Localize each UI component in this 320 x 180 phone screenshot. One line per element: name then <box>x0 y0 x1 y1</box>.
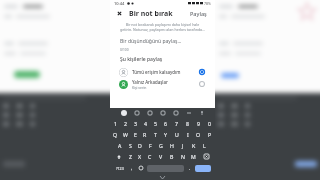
button[interactable]: Google <box>121 110 127 116</box>
button[interactable]: U <box>171 129 182 140</box>
button[interactable]: 4 <box>140 118 150 129</box>
staticText: O <box>196 131 201 138</box>
staticText: G <box>159 142 163 149</box>
button[interactable]: K <box>188 140 199 151</box>
button[interactable]: L <box>199 140 210 151</box>
staticText: 78% <box>204 1 211 6</box>
button[interactable]: O <box>193 129 204 140</box>
button[interactable]: ?123 <box>113 162 127 174</box>
button[interactable]: 6 <box>160 118 171 129</box>
staticText: 0/100 <box>120 48 129 52</box>
button[interactable]: Gönder <box>195 165 211 172</box>
staticText: T <box>154 131 157 138</box>
button[interactable]: , <box>127 162 136 174</box>
staticText: F <box>149 142 152 149</box>
staticText: W <box>123 131 128 138</box>
staticText: I <box>187 131 189 138</box>
button[interactable]: H <box>166 140 177 151</box>
staticText: H <box>170 142 174 149</box>
staticText: 4 <box>144 120 147 127</box>
staticText: D <box>138 142 142 149</box>
button[interactable]: V <box>155 151 166 162</box>
button[interactable]: Seçili değil <box>198 80 206 88</box>
button[interactable]: Araç 3 <box>173 110 179 116</box>
staticText: V <box>159 153 163 160</box>
button[interactable]: Shift <box>112 151 125 162</box>
staticText: , <box>131 165 133 172</box>
button[interactable]: X <box>135 151 145 162</box>
button[interactable]: Tümü erişim kalsaydım <box>110 66 215 78</box>
staticText: P <box>208 131 212 138</box>
staticText: J <box>182 142 184 149</box>
button[interactable]: C <box>145 151 155 162</box>
staticText: 7 <box>175 120 178 127</box>
button[interactable]: 0 <box>204 118 215 129</box>
staticText: . <box>189 165 191 172</box>
staticText: Tümü erişim kalsaydım <box>132 69 181 75</box>
button[interactable]: A <box>115 140 125 151</box>
button[interactable]: S <box>125 140 135 151</box>
button[interactable]: D <box>135 140 145 151</box>
button[interactable]: N <box>177 151 188 162</box>
button[interactable]: 5 <box>150 118 160 129</box>
button[interactable]: Araç 2 <box>160 110 166 116</box>
button[interactable]: Araç 0 <box>134 110 140 116</box>
staticText: 9 <box>197 120 200 127</box>
staticText: N <box>181 153 185 160</box>
staticText: 10:44 <box>114 1 125 6</box>
staticText: Y <box>164 131 167 138</box>
button[interactable]: Kapat <box>115 9 124 18</box>
staticText: 8 <box>186 120 189 127</box>
staticText: S <box>129 142 132 149</box>
button[interactable]: T <box>150 129 160 140</box>
button[interactable]: Seçili <box>198 68 206 76</box>
button[interactable]: Emoji <box>136 162 146 174</box>
button[interactable]: Paylaş <box>187 8 210 19</box>
button[interactable]: 2 <box>120 118 130 129</box>
staticText: 3 <box>134 120 137 127</box>
staticText: Yalnız Arkadaşlar <box>132 79 168 85</box>
button[interactable]: Daha fazla <box>186 110 192 116</box>
button[interactable]: Boşluk <box>147 165 184 172</box>
button[interactable]: W <box>120 129 130 140</box>
button[interactable]: B <box>166 151 177 162</box>
button[interactable]: Yalnız Arkadaşlar <box>110 78 215 90</box>
button[interactable]: Z <box>125 151 135 162</box>
staticText: B <box>170 153 174 160</box>
button[interactable]: I <box>182 129 193 140</box>
staticText: Bir not bırak <box>129 9 173 19</box>
button[interactable]: R <box>140 129 150 140</box>
button[interactable]: P <box>204 129 215 140</box>
button[interactable]: F <box>145 140 155 151</box>
staticText: 1 <box>114 120 117 127</box>
button[interactable]: Q <box>110 129 120 140</box>
button[interactable]: Y <box>160 129 171 140</box>
button[interactable]: J <box>177 140 188 151</box>
button[interactable]: 3 <box>130 118 140 129</box>
staticText: K <box>192 142 196 149</box>
staticText: C <box>148 153 152 160</box>
staticText: 5 <box>154 120 157 127</box>
button[interactable]: 8 <box>182 118 193 129</box>
staticText: U <box>175 131 179 138</box>
staticText: Paylaş <box>190 10 207 17</box>
button[interactable]: G <box>155 140 166 151</box>
staticText: Bir düşündüğünü paylaş... <box>120 38 182 45</box>
button[interactable]: M <box>188 151 199 162</box>
button[interactable]: Sil <box>199 151 213 162</box>
staticText: Kişi verin <box>132 85 147 90</box>
button[interactable]: 1 <box>110 118 120 129</box>
button[interactable]: 9 <box>193 118 204 129</box>
staticText: E <box>134 131 137 138</box>
button[interactable]: . <box>185 162 194 174</box>
staticText: Şu kişilerle paylaş <box>120 56 163 63</box>
button[interactable]: Araç 1 <box>147 110 153 116</box>
staticText: Z <box>129 153 132 160</box>
staticText: L <box>203 142 206 149</box>
button[interactable]: 7 <box>171 118 182 129</box>
staticText: 6 <box>164 120 167 127</box>
button[interactable]: Bir düşündüğünü paylaş... <box>120 36 205 46</box>
staticText: Q <box>113 131 118 138</box>
button[interactable]: E <box>130 129 140 140</box>
button[interactable]: Mikrofon <box>199 110 205 116</box>
